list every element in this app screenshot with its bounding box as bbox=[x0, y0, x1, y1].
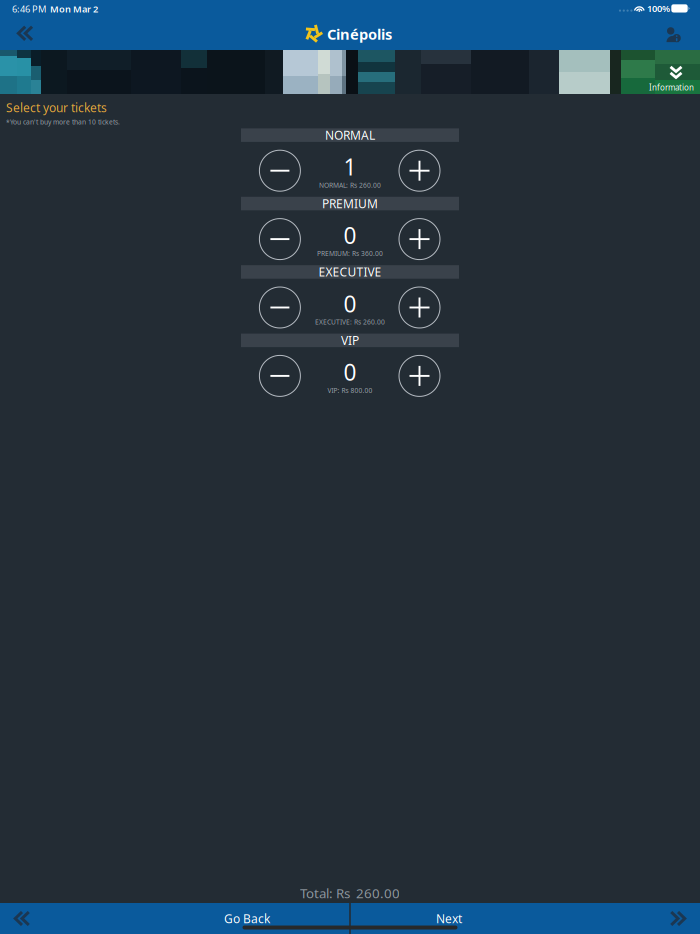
button[interactable]: Increase PREMIUM tickets bbox=[397, 217, 441, 261]
button[interactable]: Increase NORMAL tickets bbox=[397, 149, 441, 193]
button[interactable]: Decrease EXECUTIVE tickets bbox=[258, 285, 302, 329]
button[interactable]: Increase EXECUTIVE tickets bbox=[397, 285, 441, 329]
staticText: NORMAL: Rs 260.00 bbox=[319, 181, 381, 190]
staticText: 0 bbox=[343, 220, 356, 250]
staticText: NORMAL bbox=[325, 127, 375, 143]
staticText: Go Back bbox=[224, 910, 270, 926]
button[interactable]: Account information bbox=[661, 25, 683, 45]
staticText: *You can't buy more than 10 tickets. bbox=[6, 117, 120, 126]
staticText: 0 bbox=[343, 357, 356, 387]
button[interactable]: Decrease NORMAL tickets bbox=[258, 149, 302, 193]
staticText: Information bbox=[649, 82, 694, 93]
staticText: Total: Rs 260.00 bbox=[300, 884, 400, 902]
button[interactable]: Go Back bbox=[0, 903, 350, 934]
staticText: Cinépolis bbox=[327, 24, 392, 44]
button[interactable]: Back bbox=[1, 17, 49, 49]
staticText: VIP bbox=[341, 332, 359, 348]
staticText: 1 bbox=[343, 152, 356, 182]
staticText: VIP: Rs 800.00 bbox=[327, 386, 372, 395]
staticText: Mon Mar 2 bbox=[46, 3, 98, 15]
staticText: 0 bbox=[343, 288, 356, 319]
staticText: EXECUTIVE bbox=[318, 264, 381, 280]
button[interactable]: Information bbox=[646, 62, 700, 94]
button[interactable]: Increase VIP tickets bbox=[397, 354, 441, 398]
staticText: 100% bbox=[647, 2, 670, 14]
staticText: Select your tickets bbox=[6, 100, 107, 115]
staticText: 6:46 PM bbox=[12, 3, 46, 15]
button[interactable]: Next bbox=[350, 903, 700, 934]
button[interactable]: Decrease VIP tickets bbox=[258, 354, 302, 398]
staticText: Next bbox=[436, 910, 462, 926]
staticText: EXECUTIVE: Rs 260.00 bbox=[315, 317, 385, 326]
staticText: PREMIUM bbox=[322, 196, 378, 211]
button[interactable]: Decrease PREMIUM tickets bbox=[258, 217, 302, 261]
staticText: PREMIUM: Rs 360.00 bbox=[317, 249, 383, 258]
